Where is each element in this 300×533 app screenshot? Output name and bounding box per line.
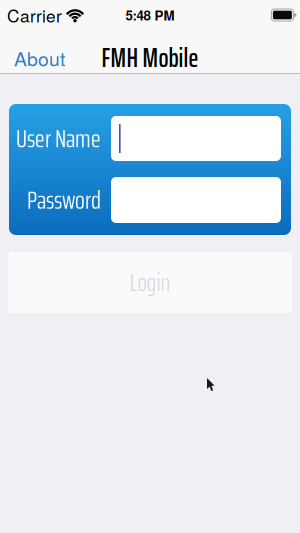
- button[interactable]: About: [14, 44, 65, 72]
- staticText: User Name: [16, 119, 101, 158]
- staticText: 5:48 PM: [125, 5, 174, 25]
- button[interactable]: Login: [8, 252, 292, 313]
- staticText: Password: [27, 180, 101, 220]
- staticText: Carrier: [7, 3, 62, 27]
- staticText: Login: [129, 263, 170, 302]
- staticText: FMH Mobile: [101, 37, 198, 78]
- button[interactable]: User Name text field: [111, 116, 281, 161]
- staticText: About: [14, 44, 65, 72]
- button[interactable]: Password text field: [111, 177, 281, 223]
